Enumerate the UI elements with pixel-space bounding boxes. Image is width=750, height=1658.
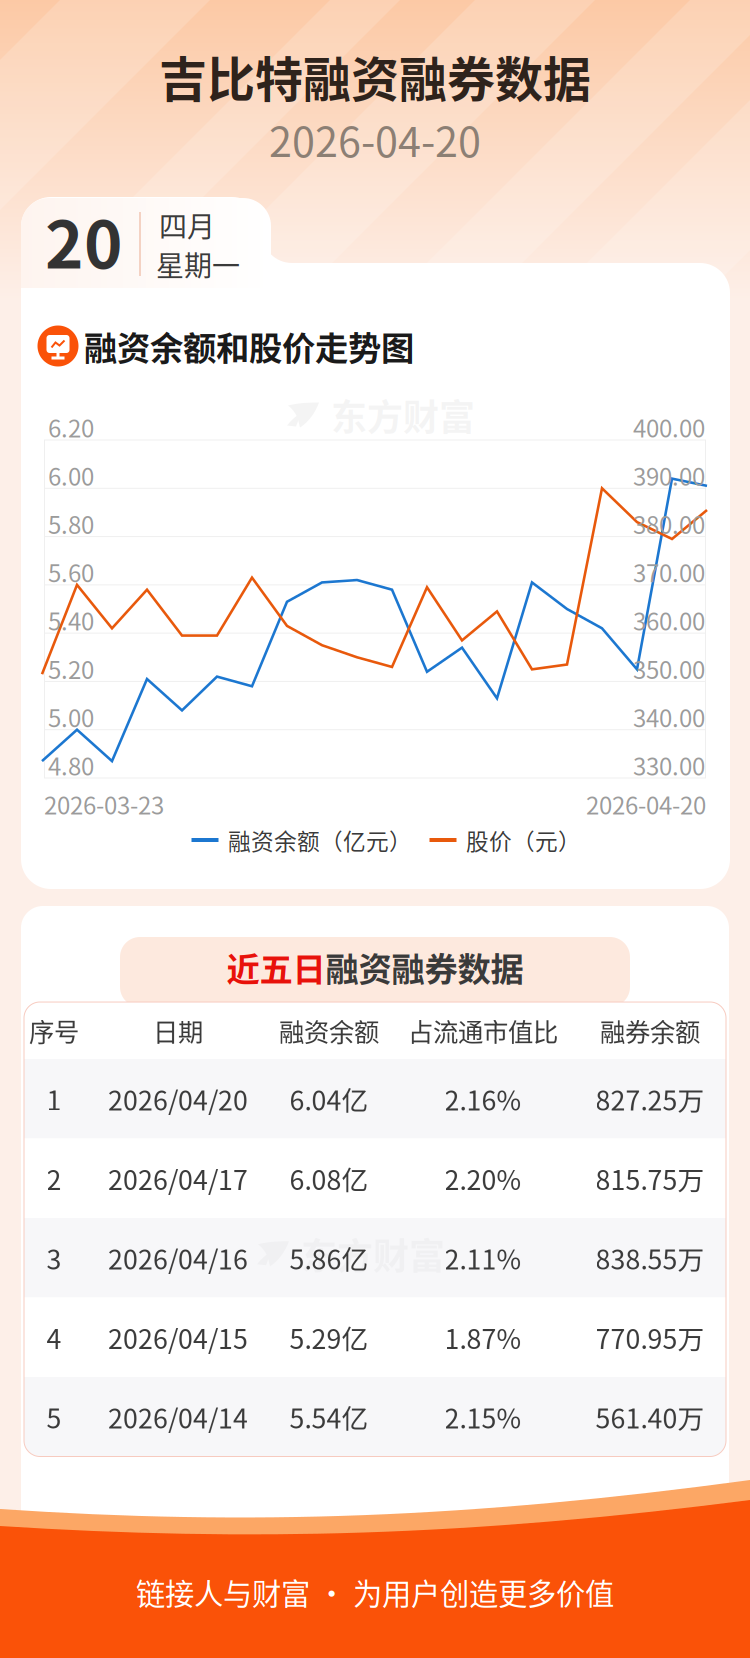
- staticText: 350.00: [633, 651, 705, 686]
- staticText: 400.00: [633, 410, 705, 444]
- staticText: 链接人与财富 · 为用户创造更多价值: [136, 1571, 614, 1613]
- staticText: 370.00: [633, 554, 705, 589]
- staticText: 2026-04-20: [586, 787, 706, 821]
- staticText: 2026/04/20: [108, 1079, 248, 1118]
- staticText: 近五日: [226, 943, 325, 991]
- staticText: 5.29亿: [289, 1318, 368, 1356]
- staticText: 5.60: [48, 554, 94, 589]
- staticText: 6.20: [48, 410, 94, 444]
- staticText: 6.00: [48, 458, 94, 493]
- staticText: 2026/04/14: [108, 1397, 248, 1436]
- staticText: 东方财富: [301, 1228, 445, 1280]
- staticText: 5.00: [48, 699, 94, 734]
- staticText: 330.00: [633, 748, 705, 782]
- staticText: 838.55万: [595, 1238, 704, 1277]
- staticText: 340.00: [633, 699, 705, 734]
- staticText: 561.40万: [595, 1397, 704, 1436]
- staticText: 融资融券数据: [325, 943, 523, 991]
- staticText: 5.40: [48, 603, 94, 638]
- staticText: 东方财富: [331, 389, 475, 441]
- staticText: 2.11%: [444, 1238, 521, 1277]
- staticText: 390.00: [633, 458, 705, 493]
- staticText: 1.87%: [444, 1318, 521, 1356]
- staticText: 2026-03-23: [44, 787, 164, 821]
- staticText: 2.20%: [444, 1159, 521, 1197]
- staticText: 5: [46, 1397, 61, 1436]
- staticText: 5.20: [48, 651, 94, 686]
- staticText: 3: [46, 1238, 61, 1277]
- staticText: 日期: [153, 1012, 203, 1049]
- staticText: 2.16%: [444, 1079, 521, 1118]
- staticText: 20: [45, 193, 123, 287]
- staticText: 股价（元）: [466, 824, 581, 856]
- staticText: 融资余额（亿元）: [228, 824, 412, 856]
- staticText: 1: [46, 1079, 61, 1118]
- staticText: 融资余额: [279, 1012, 379, 1049]
- staticText: 360.00: [633, 603, 705, 638]
- staticText: 770.95万: [595, 1318, 704, 1356]
- staticText: 827.25万: [595, 1079, 704, 1118]
- staticText: 吉比特融资融券数据: [159, 41, 591, 111]
- staticText: 5.80: [48, 506, 94, 541]
- staticText: 四月: [159, 205, 215, 245]
- staticText: 2026-04-20: [269, 109, 481, 169]
- staticText: 星期一: [156, 244, 240, 284]
- staticText: 4: [46, 1318, 61, 1356]
- staticText: 2026/04/15: [108, 1318, 248, 1356]
- staticText: 2: [46, 1159, 61, 1197]
- staticText: 融券余额: [600, 1012, 700, 1049]
- staticText: 融资余额和股价走势图: [84, 322, 414, 370]
- staticText: 4.80: [48, 748, 94, 782]
- staticText: 占流通市值比: [408, 1012, 558, 1049]
- staticText: 2026/04/16: [108, 1238, 248, 1277]
- staticText: 6.04亿: [289, 1079, 368, 1118]
- staticText: 5.86亿: [289, 1238, 368, 1277]
- staticText: 380.00: [633, 506, 705, 541]
- staticText: 2.15%: [444, 1397, 521, 1436]
- staticText: 序号: [29, 1012, 79, 1049]
- staticText: 815.75万: [595, 1159, 704, 1197]
- staticText: 6.08亿: [289, 1159, 368, 1197]
- staticText: 5.54亿: [289, 1397, 368, 1436]
- staticText: 2026/04/17: [108, 1159, 248, 1197]
